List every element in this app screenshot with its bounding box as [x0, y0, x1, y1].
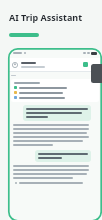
button[interactable]	[35, 150, 91, 162]
button[interactable]	[11, 124, 99, 146]
button[interactable]: Assistant	[83, 62, 88, 67]
button[interactable]: Assistant	[8, 58, 102, 71]
staticText: AI Trip Assistant	[9, 11, 83, 23]
button[interactable]	[23, 105, 91, 121]
button[interactable]	[11, 79, 99, 102]
button[interactable]: Open preview	[91, 64, 102, 83]
button[interactable]	[11, 165, 99, 179]
